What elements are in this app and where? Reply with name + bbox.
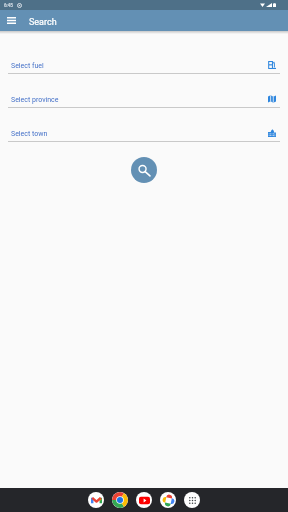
- button[interactable]: YouTube: [136, 492, 152, 508]
- staticText: Select province: [11, 96, 59, 104]
- button[interactable]: Chrome: [112, 492, 128, 508]
- button[interactable]: Search: [131, 157, 157, 183]
- button[interactable]: Gmail: [88, 492, 104, 508]
- staticText: Select town: [11, 130, 48, 138]
- other: Notification: [17, 3, 22, 8]
- staticText: 6:45: [4, 3, 13, 8]
- staticText: Select fuel: [11, 62, 44, 70]
- button[interactable]: Select town: [0, 120, 288, 142]
- button[interactable]: Photos: [160, 492, 176, 508]
- button[interactable]: Select fuel: [0, 52, 288, 74]
- staticText: Search: [29, 17, 57, 28]
- button[interactable]: Select province: [0, 86, 288, 108]
- button[interactable]: Open navigation menu: [0, 10, 22, 31]
- button[interactable]: All apps: [184, 492, 200, 508]
